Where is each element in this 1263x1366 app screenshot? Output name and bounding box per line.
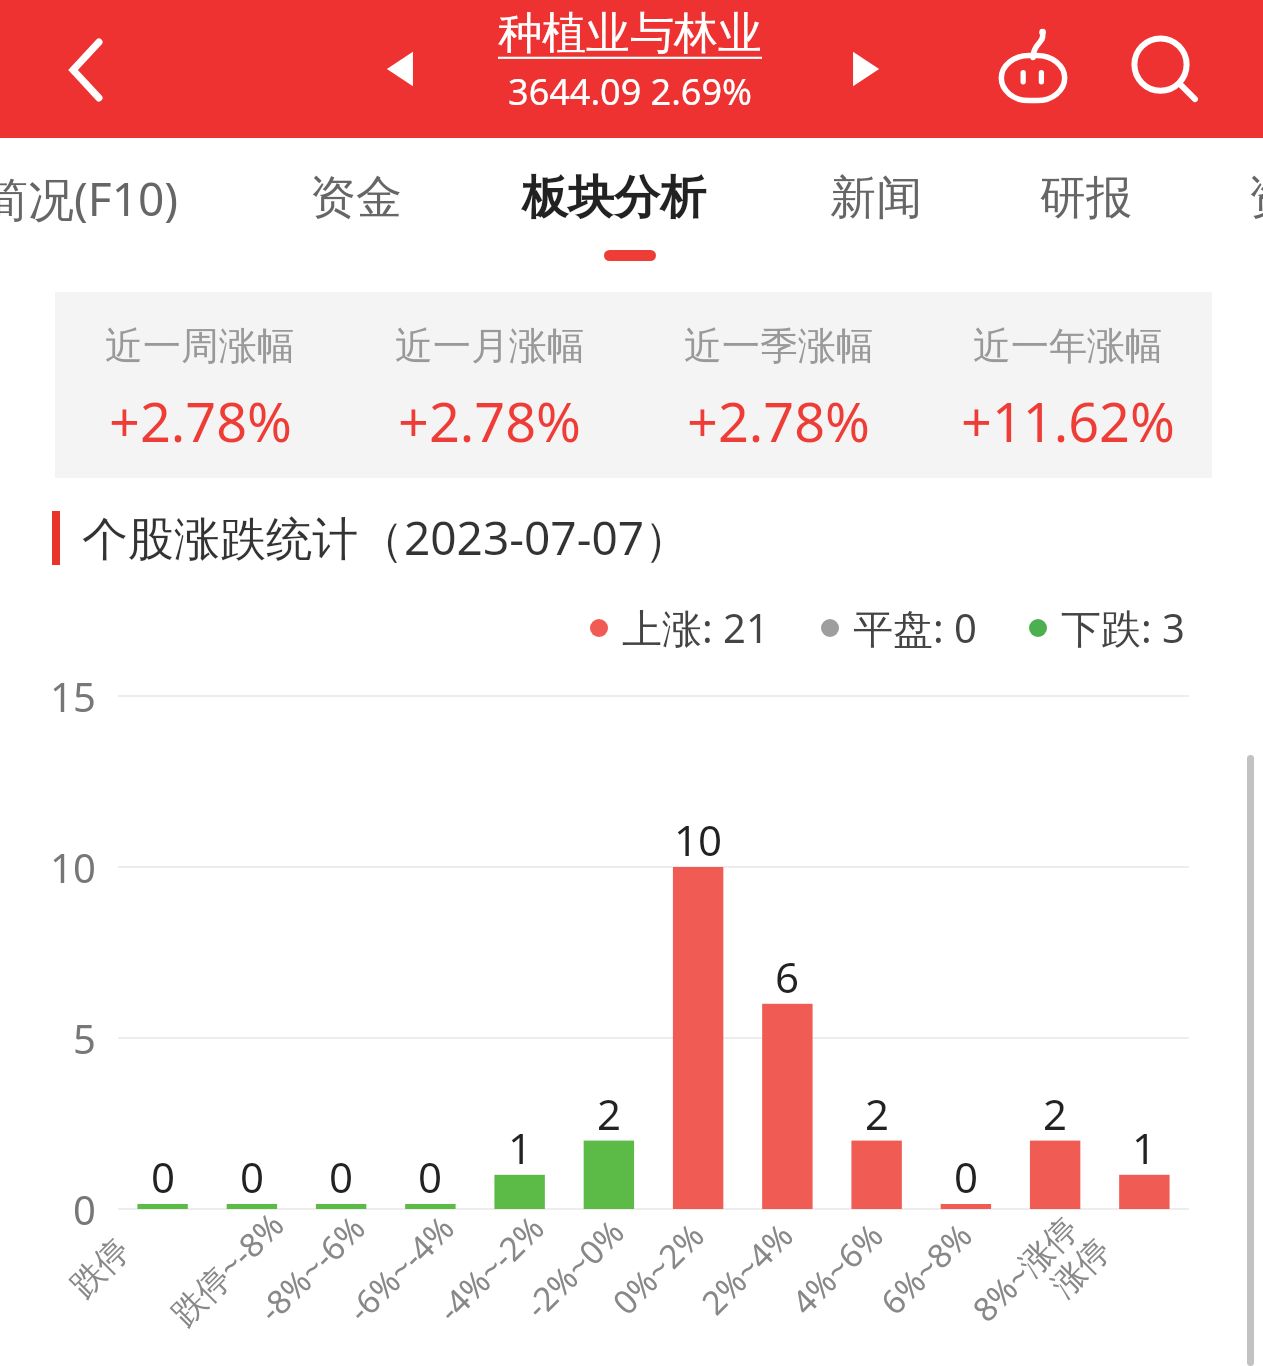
staticText: 1 <box>1132 1119 1157 1176</box>
staticText: +2.78% <box>398 384 581 458</box>
staticText: +11.62% <box>961 384 1175 458</box>
staticText: 上涨: 21 <box>622 600 769 655</box>
button[interactable]: 研报 <box>1040 138 1132 258</box>
staticText: 5 <box>73 1011 96 1065</box>
staticText: 6%~8% <box>870 1213 981 1324</box>
staticText: 平盘: 0 <box>853 600 977 655</box>
button[interactable]: 平盘: 0 <box>821 600 977 655</box>
button[interactable]: Previous sector <box>372 38 434 100</box>
staticText: 近一月涨幅 <box>395 322 585 370</box>
staticText: 0 <box>329 1148 354 1205</box>
staticText: +2.78% <box>687 384 870 458</box>
staticText: 3644.09 2.69% <box>508 67 752 116</box>
staticText: 2 <box>1043 1085 1068 1142</box>
staticText: 0%~2% <box>602 1213 713 1324</box>
staticText: -6%~-4% <box>338 1206 463 1331</box>
staticText: 种植业与林业 <box>498 6 762 61</box>
staticText: 2 <box>865 1085 890 1142</box>
staticText: 0 <box>73 1182 96 1236</box>
staticText: 板块分析 <box>522 169 706 227</box>
button[interactable]: 近一季涨幅 <box>634 292 923 478</box>
button[interactable]: 种植业与林业 <box>430 6 830 116</box>
staticText: 资金 <box>310 169 402 227</box>
button[interactable]: Next sector <box>832 38 894 100</box>
staticText: 0 <box>240 1148 265 1205</box>
staticText: 0 <box>151 1148 176 1205</box>
staticText: 个股涨跌统计（2023-07-07） <box>82 506 691 569</box>
staticText: 跌停~-8% <box>161 1202 293 1335</box>
staticText: 8%~涨停 <box>962 1206 1088 1331</box>
staticText: 0 <box>418 1148 443 1205</box>
staticText: 6 <box>775 948 800 1005</box>
staticText: 10 <box>674 811 723 868</box>
button[interactable]: 近一年涨幅 <box>923 292 1212 478</box>
button[interactable]: 简况(F10) <box>0 138 179 258</box>
button[interactable]: 下跌: 3 <box>1029 600 1185 655</box>
button[interactable]: 上涨: 21 <box>590 600 769 655</box>
staticText: 10 <box>50 840 96 894</box>
staticText: +2.78% <box>109 384 292 458</box>
button[interactable]: 近一月涨幅 <box>345 292 634 478</box>
button[interactable]: AI assistant <box>985 25 1081 115</box>
button[interactable]: 新闻 <box>830 138 922 258</box>
button[interactable]: Search <box>1120 25 1210 115</box>
staticText: 0 <box>954 1148 979 1205</box>
staticText: -8%~-6% <box>249 1206 374 1331</box>
staticText: 新闻 <box>830 169 922 227</box>
staticText: 2%~4% <box>691 1213 802 1324</box>
staticText: -4%~-2% <box>428 1206 553 1331</box>
staticText: 近一季涨幅 <box>684 322 874 370</box>
button[interactable]: Back <box>30 22 140 118</box>
button[interactable]: 资 <box>1248 138 1263 258</box>
staticText: 15 <box>50 669 96 723</box>
staticText: 2 <box>597 1085 622 1142</box>
staticText: -2%~0% <box>515 1209 634 1328</box>
staticText: 近一周涨幅 <box>105 322 295 370</box>
staticText: 下跌: 3 <box>1061 600 1185 655</box>
staticText: 研报 <box>1040 169 1132 227</box>
staticText: 4%~6% <box>781 1213 892 1324</box>
staticText: 跌停 <box>62 1230 138 1306</box>
staticText: 简况(F10) <box>0 167 179 230</box>
staticText: 1 <box>508 1119 533 1176</box>
staticText: 涨停 <box>1043 1230 1119 1306</box>
button[interactable]: 板块分析 <box>522 138 706 258</box>
button[interactable]: 近一周涨幅 <box>55 292 345 478</box>
staticText: 资 <box>1248 169 1263 227</box>
button[interactable]: 资金 <box>310 138 402 258</box>
staticText: 近一年涨幅 <box>973 322 1163 370</box>
